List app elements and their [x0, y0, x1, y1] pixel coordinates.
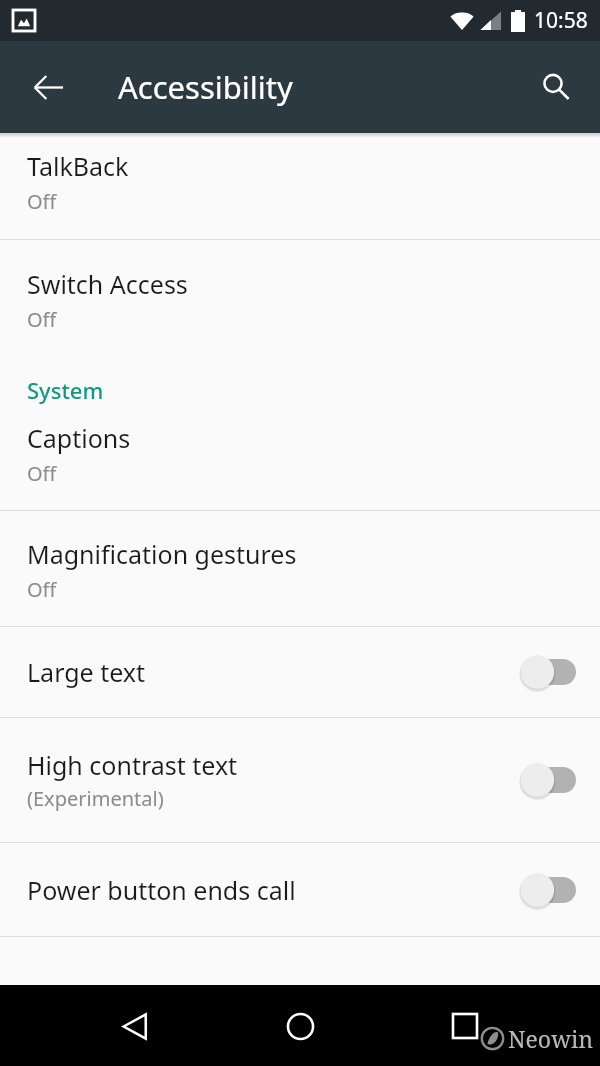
- staticText: Neowin: [508, 1023, 594, 1054]
- staticText: System: [27, 375, 104, 405]
- staticText: Captions: [27, 421, 131, 455]
- button[interactable]: TalkBack: [0, 138, 600, 239]
- button[interactable]: Off: [520, 651, 576, 693]
- button[interactable]: Captions: [0, 413, 600, 510]
- staticText: 10:58: [534, 6, 588, 35]
- staticText: Off: [27, 188, 57, 215]
- staticText: Large text: [27, 655, 146, 689]
- staticText: Power button ends call: [27, 873, 296, 907]
- button[interactable]: Off: [520, 869, 576, 911]
- staticText: (Experimental): [27, 785, 164, 812]
- button[interactable]: Search: [528, 59, 584, 115]
- staticText: Switch Access: [27, 267, 188, 301]
- staticText: Magnification gestures: [27, 537, 297, 571]
- button[interactable]: Navigate up: [20, 59, 76, 115]
- staticText: Off: [27, 460, 57, 487]
- staticText: High contrast text: [27, 748, 238, 782]
- button[interactable]: Power button ends call: [0, 843, 600, 936]
- button[interactable]: Recent apps: [438, 999, 492, 1053]
- button[interactable]: Switch Access: [0, 240, 600, 375]
- button[interactable]: Home: [273, 999, 327, 1053]
- staticText: Accessibility: [118, 66, 293, 108]
- staticText: TalkBack: [27, 149, 129, 183]
- button[interactable]: Magnification gestures: [0, 511, 600, 626]
- button[interactable]: High contrast text: [0, 718, 600, 842]
- button[interactable]: Back: [108, 999, 162, 1053]
- staticText: Off: [27, 306, 57, 333]
- staticText: Off: [27, 576, 57, 603]
- button[interactable]: Large text: [0, 627, 600, 717]
- button[interactable]: Off: [520, 759, 576, 801]
